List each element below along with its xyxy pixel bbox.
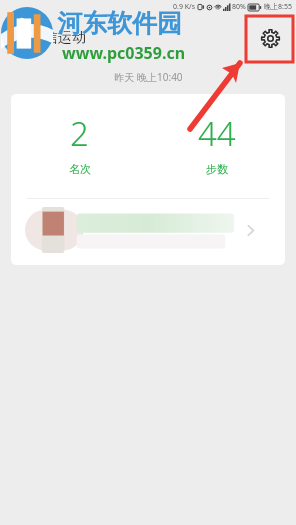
staticText: 0.9 K/s [173, 2, 195, 12]
button[interactable]: Back [0, 21, 34, 55]
staticText: 80% [232, 2, 246, 12]
button[interactable]: Ranking detail [11, 199, 285, 265]
staticText: 名次 [69, 162, 91, 176]
staticText: www.pc0359.cn [62, 42, 186, 64]
staticText: 步数 [206, 162, 228, 176]
staticText: 河东软件园 [57, 8, 182, 39]
staticText: 微信运动 [30, 29, 86, 47]
staticText: 晚上8:55 [264, 2, 292, 12]
staticText: 昨天 晚上10:40 [114, 70, 183, 84]
button[interactable]: 2 [11, 94, 285, 198]
button[interactable]: Settings [252, 20, 288, 56]
staticText: 2 [70, 111, 89, 156]
staticText: 44 [198, 111, 236, 156]
